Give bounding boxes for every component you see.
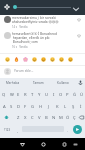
button[interactable]: Recent apps [58, 138, 70, 150]
button[interactable]: Send [73, 125, 82, 134]
staticText: Yorum ekle... [14, 69, 34, 73]
button[interactable]: Reaction 5 [39, 54, 48, 64]
button[interactable]: B [43, 112, 50, 123]
button[interactable]: H [37, 101, 45, 112]
button[interactable]: Like [77, 34, 81, 38]
staticText: X [24, 115, 27, 121]
button[interactable]: Reaction 6 [48, 54, 57, 64]
button[interactable]: Home [37, 138, 49, 150]
staticText: K [56, 104, 59, 110]
staticText: Ü [80, 92, 84, 98]
button[interactable]: Reaction 7 [57, 54, 66, 64]
staticText: Q [2, 92, 6, 98]
button[interactable]: F [22, 101, 29, 112]
button[interactable]: Ş [69, 101, 77, 112]
staticText: F [24, 104, 27, 110]
other: Expand [72, 5, 80, 13]
button[interactable]: N [50, 112, 57, 123]
staticText: S [10, 104, 13, 110]
button[interactable]: I [50, 89, 57, 100]
staticText: Ş [72, 104, 75, 110]
button[interactable]: G [29, 101, 37, 112]
button[interactable]: Back [16, 138, 28, 150]
button[interactable]: Ö [64, 112, 71, 123]
staticText: A [3, 104, 6, 110]
staticText: P [66, 92, 69, 98]
button[interactable]: Ç [71, 112, 78, 123]
button[interactable]: hersaselbertⒶⒶ İ Bonusheod hepardan, ell… [0, 31, 85, 51]
staticText: . [67, 128, 68, 133]
button[interactable]: İ [77, 101, 85, 112]
button[interactable]: Shift [1, 112, 12, 123]
button[interactable]: T [29, 89, 36, 100]
staticText: M [59, 115, 63, 121]
staticText: 14 s Yanıtla [12, 25, 28, 29]
staticText: B [45, 115, 48, 121]
button[interactable]: R [22, 89, 29, 100]
button[interactable]: Y [36, 89, 43, 100]
staticText: mervesakarsimu_i bir sonraki ahalsesbıet… [12, 16, 59, 24]
staticText: V [38, 115, 41, 121]
staticText: H [39, 104, 43, 110]
button[interactable]: J [45, 101, 53, 112]
button[interactable]: C [29, 112, 36, 123]
staticText: G [31, 104, 35, 110]
staticText: Ğ [73, 92, 77, 98]
button[interactable]: Merhaba [0, 78, 26, 87]
button[interactable]: Kullanıcı [51, 78, 76, 87]
button[interactable]: Z [14, 112, 22, 123]
staticText: hersaselbertⒶⒶ İ Bonusheod hepardan, ell… [12, 32, 58, 44]
button[interactable]: X [22, 112, 29, 123]
button[interactable]: Backspace [77, 112, 85, 123]
staticText: E [17, 92, 20, 98]
button[interactable]: Reaction 4 [30, 54, 39, 64]
staticText: N [52, 115, 56, 121]
button[interactable]: Reaction 2 [12, 54, 21, 64]
button[interactable]: . [65, 127, 70, 133]
staticText: D [17, 104, 21, 110]
button[interactable]: Reaction 1 [3, 54, 12, 64]
button[interactable]: L [61, 101, 69, 112]
button[interactable]: M [57, 112, 64, 123]
button[interactable]: O [57, 89, 64, 100]
button[interactable]: Switch keyboard [70, 138, 80, 150]
button[interactable]: U [43, 89, 50, 100]
button[interactable]: Tamam [26, 78, 51, 87]
button[interactable]: P [64, 89, 71, 100]
staticText: L [64, 104, 67, 110]
button[interactable]: Like [77, 18, 81, 22]
button[interactable]: W [8, 89, 15, 100]
button[interactable]: , [15, 127, 20, 133]
button[interactable]: Ü [78, 89, 85, 100]
button[interactable]: Reaction 8 [66, 54, 75, 64]
staticText: T [31, 92, 34, 98]
button[interactable]: Yorum ekle... [0, 65, 85, 78]
button[interactable]: S [8, 101, 15, 112]
staticText: J [48, 104, 50, 110]
staticText: Ö [66, 115, 70, 121]
button[interactable]: D [15, 101, 22, 112]
button[interactable]: V [36, 112, 43, 123]
button[interactable]: Ğ [71, 89, 78, 100]
staticText: Y [38, 92, 41, 98]
staticText: Ç [73, 115, 76, 121]
staticText: I [53, 92, 55, 98]
button[interactable]: mervesakarsimu_i bir sonraki ahalsesbıet… [0, 15, 85, 30]
staticText: Merhaba [6, 81, 20, 85]
other: Brightness [4, 4, 10, 10]
button[interactable]: K [53, 101, 61, 112]
staticText: ?123 [4, 128, 11, 132]
staticText: İ [80, 104, 82, 110]
staticText: R [24, 92, 27, 98]
button[interactable]: Brightness slider [13, 5, 17, 9]
staticText: C [31, 115, 34, 121]
button[interactable]: Reaction 3 [21, 54, 30, 64]
button[interactable]: ?123 [1, 125, 14, 135]
staticText: Tamam [33, 81, 44, 85]
button[interactable]: A [1, 101, 8, 112]
staticText: Z [17, 115, 20, 121]
button[interactable]: Voice input [76, 78, 85, 87]
button[interactable]: Q [0, 89, 8, 100]
button[interactable]: E [15, 89, 22, 100]
